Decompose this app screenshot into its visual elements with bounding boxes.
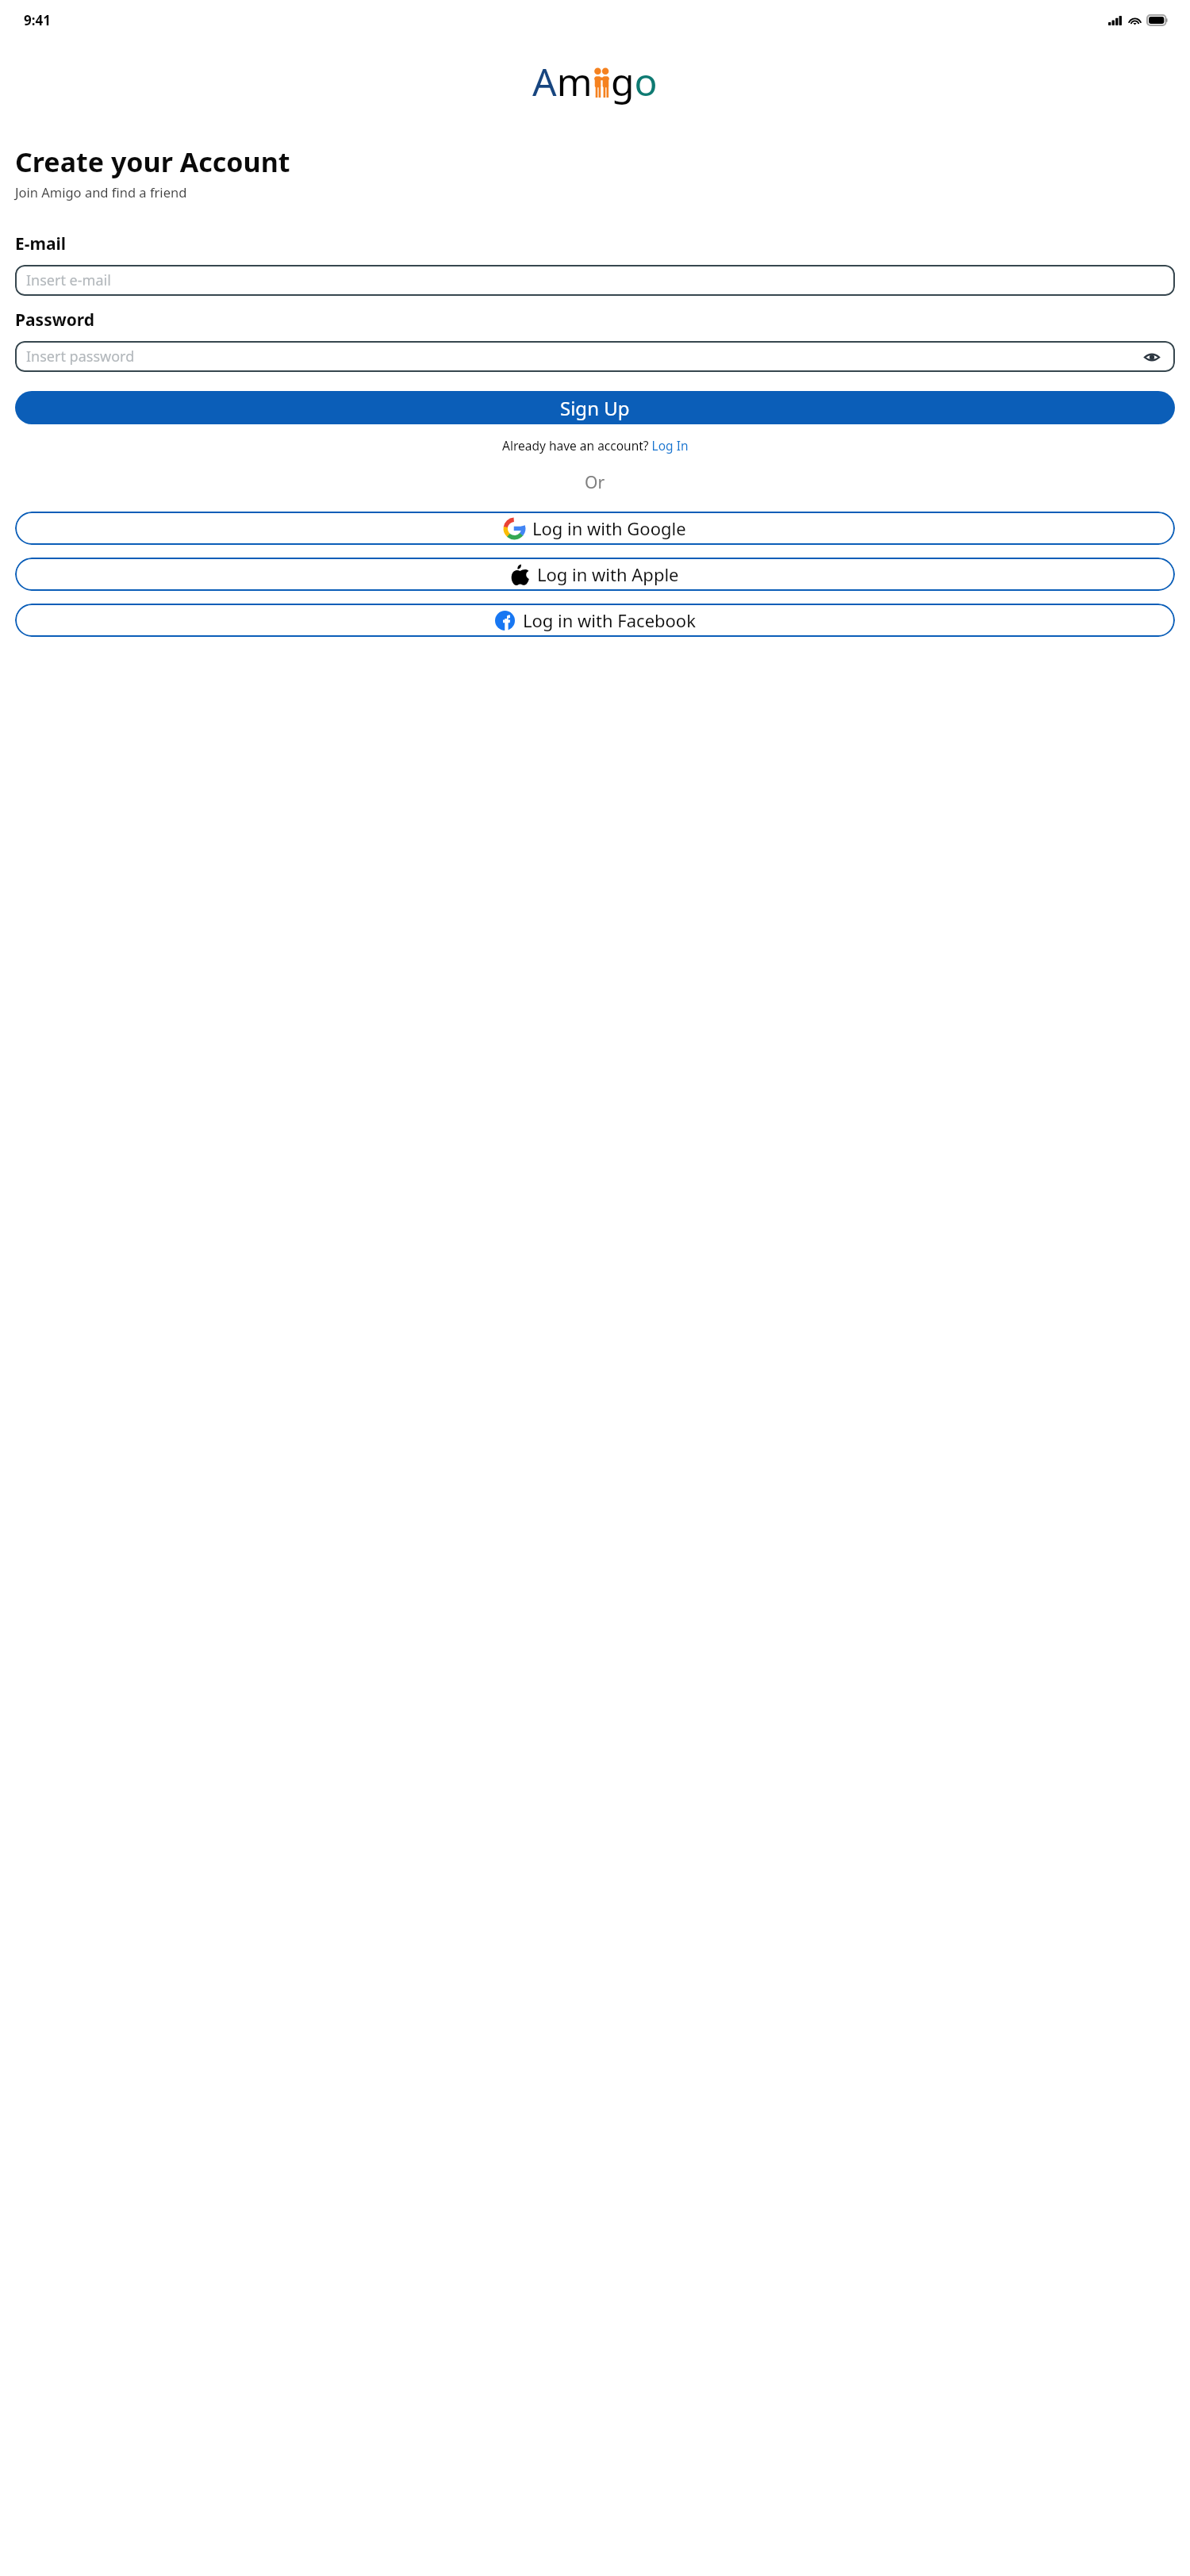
- staticText: go: [611, 56, 658, 107]
- button[interactable]: Show password: [1140, 345, 1164, 369]
- button[interactable]: Insert password: [15, 341, 1175, 372]
- staticText: Or: [585, 471, 605, 494]
- staticText: Sign Up: [560, 395, 630, 421]
- staticText: Create your Account: [15, 144, 290, 180]
- staticText: Am: [532, 56, 593, 107]
- staticText: Password: [15, 309, 95, 332]
- staticText: Already have an account? Log In: [502, 437, 689, 454]
- staticText: Insert e-mail: [26, 270, 111, 290]
- button[interactable]: Log in with Apple: [15, 558, 1175, 591]
- button[interactable]: Sign Up: [15, 391, 1175, 424]
- staticText: Log in with Google: [532, 516, 686, 540]
- staticText: Insert password: [26, 347, 135, 366]
- staticText: Join Amigo and find a friend: [15, 183, 187, 201]
- button[interactable]: Already have an account? Log In: [502, 437, 689, 454]
- staticText: E-mail: [15, 232, 67, 255]
- button[interactable]: Log in with Google: [15, 512, 1175, 545]
- staticText: Log in with Apple: [537, 562, 679, 586]
- button[interactable]: Log in with Facebook: [15, 604, 1175, 637]
- staticText: Log in with Facebook: [523, 608, 696, 632]
- staticText: 9:41: [24, 11, 51, 29]
- button[interactable]: Insert e-mail: [15, 265, 1175, 296]
